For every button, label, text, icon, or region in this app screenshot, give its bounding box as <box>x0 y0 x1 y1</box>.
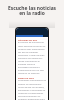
staticText: Radio en vivo <box>18 76 34 79</box>
staticText: Escuche las noticias en la radio <box>0 5 64 17</box>
staticText: El servicio de noticias por radio permit… <box>18 41 46 74</box>
staticText: Programas informativos en directo las ve… <box>18 79 46 100</box>
staticText: Titulares de hoy <box>18 38 38 41</box>
